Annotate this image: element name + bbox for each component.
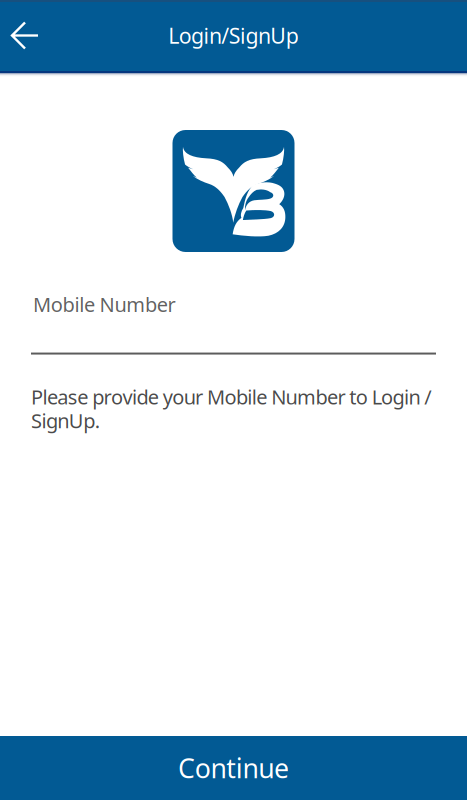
staticText: Continue — [178, 750, 289, 786]
button[interactable]: Continue — [0, 736, 467, 800]
button[interactable]: Back — [0, 5, 50, 65]
staticText: Please provide your Mobile Number to Log… — [31, 384, 431, 434]
staticText: Login/SignUp — [168, 21, 299, 50]
staticText: Mobile Number — [33, 291, 176, 318]
